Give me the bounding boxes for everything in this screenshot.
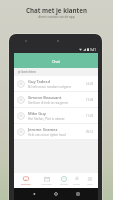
other: Back xyxy=(32,192,36,196)
staticText: Stel hoe ik heb te reageren xyxy=(28,101,69,105)
button[interactable]: Profiel xyxy=(71,176,82,186)
button[interactable]: Berichten xyxy=(14,176,37,186)
staticText: Afspraken xyxy=(41,183,52,186)
button[interactable]: Simone Beausant xyxy=(14,92,98,108)
staticText: Berichten xyxy=(21,183,31,186)
staticText: Vele van mooi tijden haal xyxy=(28,133,66,137)
staticText: direct contact via de app xyxy=(38,15,75,19)
other: Recent apps xyxy=(76,192,80,196)
button[interactable]: Guy Tadesd xyxy=(14,76,98,92)
staticText: Chat met je klanten xyxy=(26,6,87,14)
staticText: je berichten xyxy=(18,70,36,74)
button[interactable]: Meer xyxy=(82,176,98,186)
staticText: Jerome Gramez xyxy=(28,127,58,132)
staticText: Profiel xyxy=(73,183,80,186)
staticText: Meer xyxy=(87,183,93,186)
staticText: 11:47 xyxy=(86,114,94,118)
staticText: 13:04 xyxy=(86,98,94,102)
staticText: Simone Beausant xyxy=(28,95,62,100)
staticText: 9:41 xyxy=(90,48,96,52)
staticText: Ik heb mooi random volgens xyxy=(28,85,71,89)
button[interactable]: Afspraken xyxy=(37,176,56,186)
button[interactable]: Mike Guy xyxy=(14,108,98,124)
staticText: 09:12 xyxy=(86,130,94,134)
staticText: 14:22 xyxy=(86,82,94,86)
other: Home xyxy=(54,192,58,196)
staticText: Mike Guy xyxy=(28,111,46,116)
staticText: Hoi Stefan, Piet is alweer xyxy=(28,117,65,121)
button[interactable]: Jerome Gramez xyxy=(14,124,98,140)
staticText: Chat xyxy=(52,59,60,64)
staticText: Guy Tadesd xyxy=(28,79,50,84)
staticText: Klanten xyxy=(60,183,68,186)
button[interactable]: Klanten xyxy=(56,176,71,186)
